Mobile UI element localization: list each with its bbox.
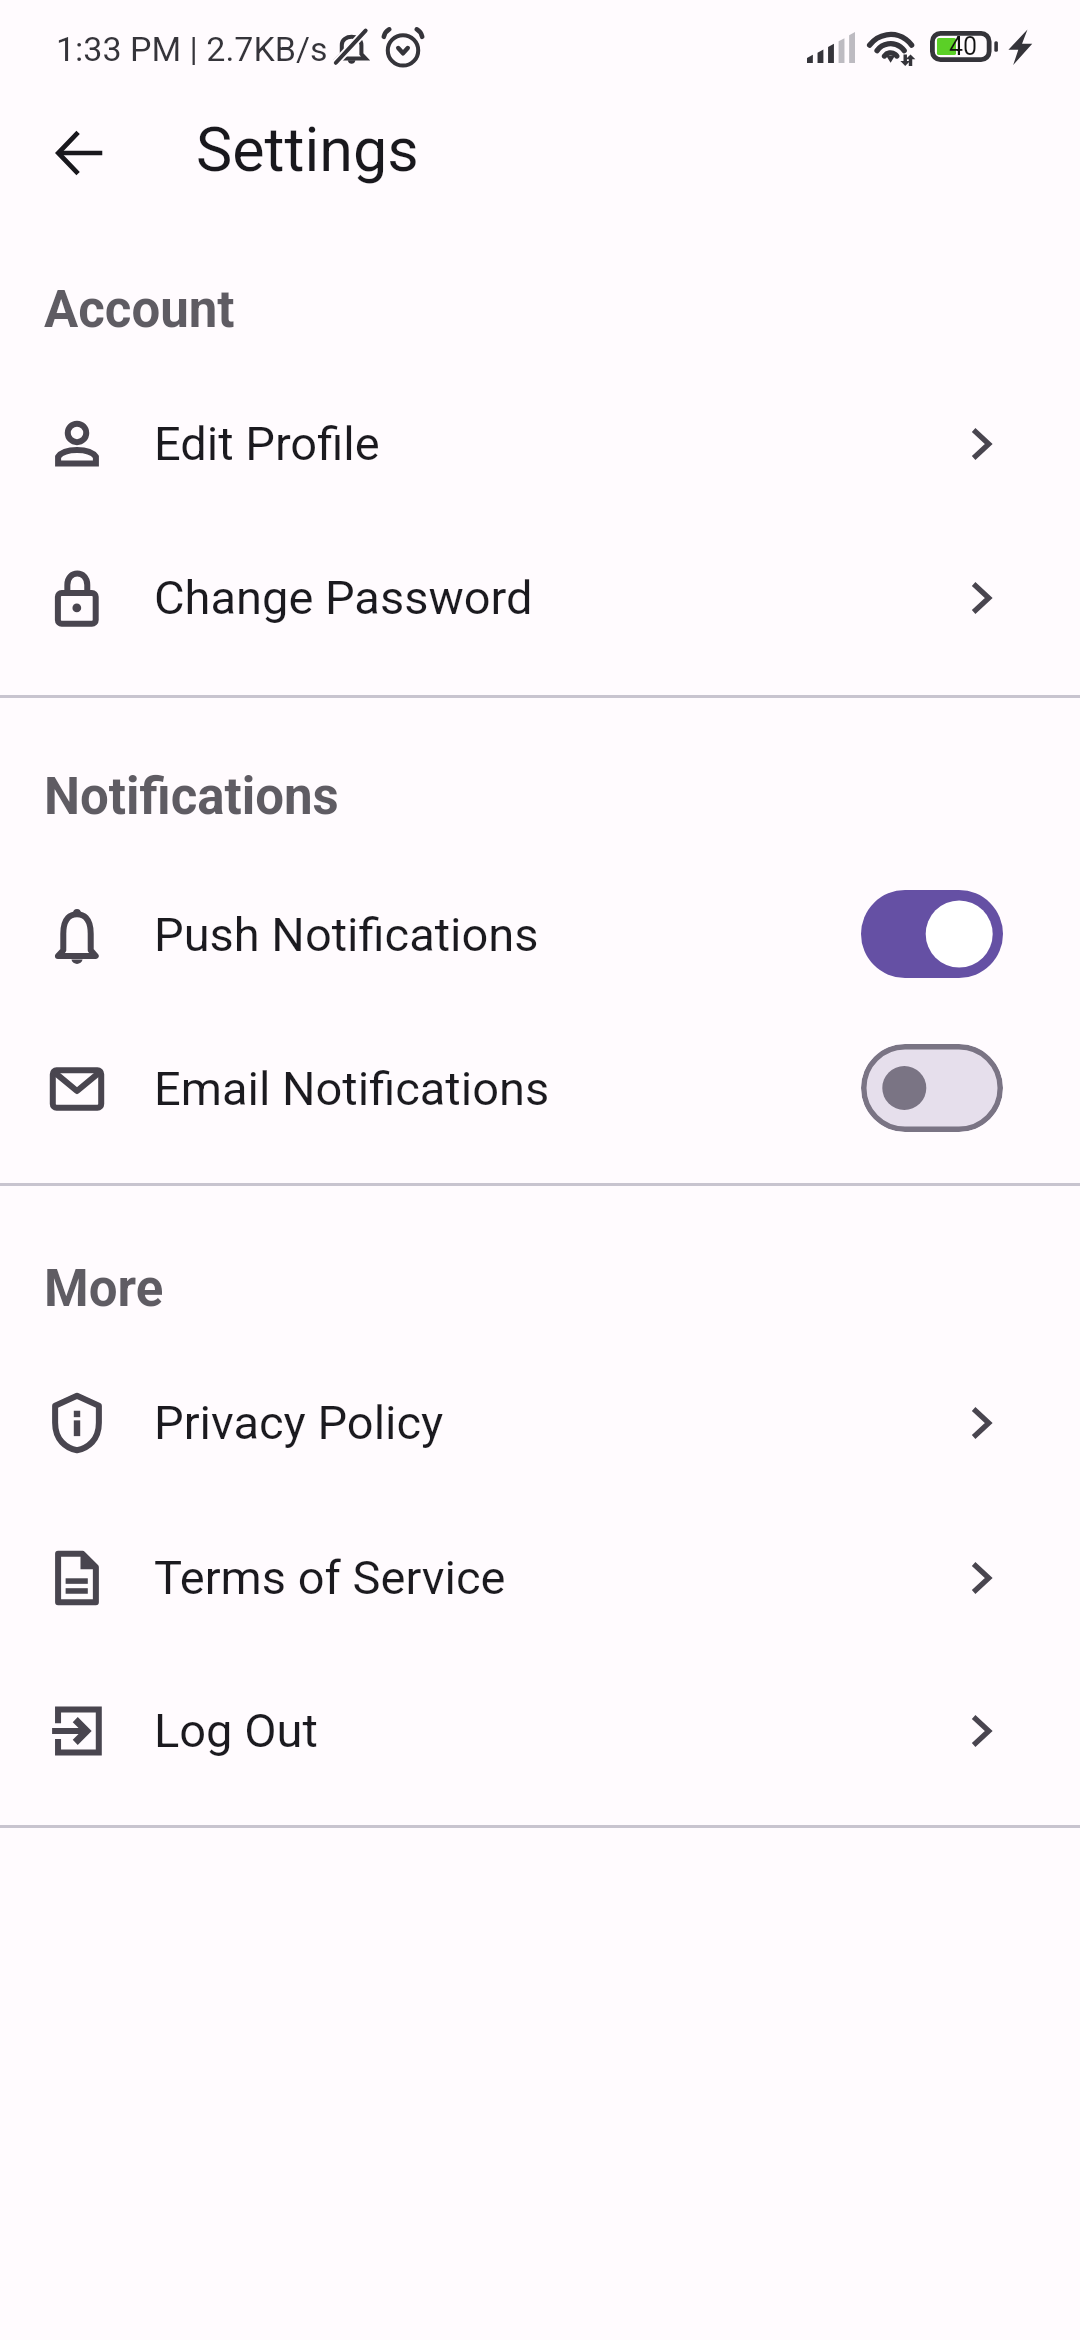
staticText: Account [44, 280, 235, 340]
staticText: Push Notifications [154, 907, 539, 962]
button[interactable]: Switch on [861, 890, 1003, 978]
staticText: 1:33 PM | 2.7KB/s [56, 29, 328, 69]
button[interactable]: Switch off [861, 1044, 1003, 1132]
staticText: More [44, 1259, 164, 1319]
staticText: Privacy Policy [154, 1395, 444, 1450]
staticText: Edit Profile [154, 416, 380, 471]
button[interactable]: Email Notifications [0, 1011, 1080, 1166]
button[interactable]: Privacy Policy [0, 1345, 1080, 1500]
button[interactable]: Back [36, 108, 126, 198]
staticText: 40 [949, 32, 978, 61]
staticText: Email Notifications [154, 1061, 550, 1116]
button[interactable]: Log Out [0, 1653, 1080, 1808]
staticText: Terms of Service [154, 1550, 506, 1605]
staticText: Log Out [154, 1703, 318, 1758]
staticText: Change Password [154, 570, 533, 625]
button[interactable]: Terms of Service [0, 1500, 1080, 1655]
staticText: Settings [196, 114, 419, 185]
staticText: Notifications [44, 767, 339, 827]
button[interactable]: Change Password [0, 520, 1080, 675]
button[interactable]: Push Notifications [0, 857, 1080, 1012]
button[interactable]: Edit Profile [0, 366, 1080, 521]
